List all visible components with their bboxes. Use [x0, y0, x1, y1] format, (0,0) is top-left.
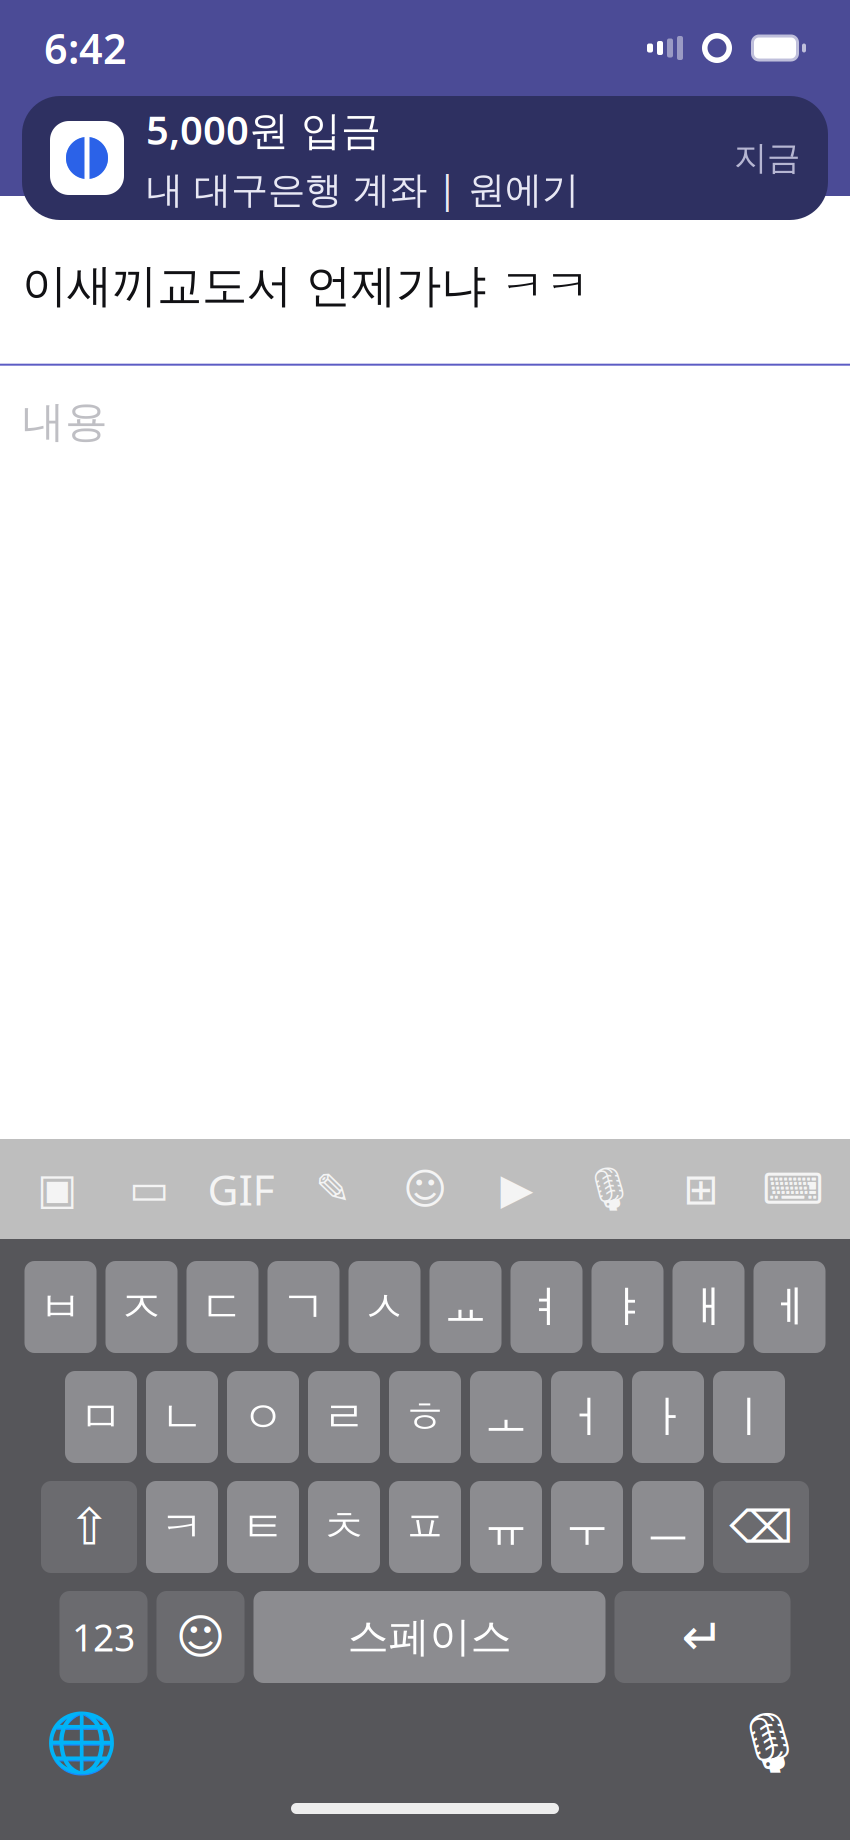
staticText: ㅣ — [727, 1390, 771, 1444]
staticText: GIF — [207, 1161, 274, 1217]
button[interactable]: 5,000원 입금 — [22, 96, 828, 220]
staticText: ▭ — [129, 1165, 169, 1213]
staticText: ㅛ — [443, 1280, 487, 1334]
button[interactable]: Dictate — [734, 1708, 804, 1778]
button[interactable]: ㄴ — [146, 1371, 218, 1463]
staticText: ㄹ — [322, 1390, 366, 1444]
staticText: ↵ — [681, 1608, 723, 1666]
button[interactable]: ㅠ — [470, 1481, 542, 1573]
button[interactable]: ㅕ — [510, 1261, 582, 1353]
staticText: ㅑ — [605, 1280, 649, 1334]
button[interactable]: GIF — [206, 1154, 276, 1224]
button[interactable]: ㅓ — [551, 1371, 623, 1463]
staticText: ㅌ — [241, 1500, 285, 1554]
staticText: ㄴ — [160, 1390, 204, 1444]
staticText: ㅊ — [322, 1500, 366, 1554]
button[interactable]: ㅇ — [227, 1371, 299, 1463]
staticText: ⇧ — [68, 1498, 110, 1556]
button[interactable]: ㄷ — [186, 1261, 258, 1353]
staticText: ☺ — [403, 1165, 447, 1213]
button[interactable]: ㅎ — [389, 1371, 461, 1463]
staticText: ㅂ — [38, 1280, 82, 1334]
button[interactable]: ㅂ — [24, 1261, 96, 1353]
button[interactable]: ㄱ — [267, 1261, 339, 1353]
button[interactable]: ㅡ — [632, 1481, 704, 1573]
button[interactable]: ㅣ — [713, 1371, 785, 1463]
staticText: ㅜ — [565, 1500, 609, 1554]
button[interactable]: 123 — [59, 1591, 147, 1683]
button[interactable]: Draw — [298, 1154, 368, 1224]
button[interactable]: ㅁ — [65, 1371, 137, 1463]
staticText: ㅍ — [403, 1500, 447, 1554]
staticText: ⌫ — [729, 1501, 793, 1553]
staticText: ㅔ — [767, 1280, 811, 1334]
staticText: ☺ — [175, 1610, 225, 1664]
staticText: ⊞ — [683, 1165, 719, 1213]
button[interactable]: More — [666, 1154, 736, 1224]
button[interactable]: ㅗ — [470, 1371, 542, 1463]
staticText: ㅡ — [646, 1500, 690, 1554]
button[interactable]: ㅋ — [146, 1481, 218, 1573]
button[interactable]: Return — [614, 1591, 790, 1683]
staticText: ㅈ — [119, 1280, 163, 1334]
staticText: 내 대구은행 계좌 | 원에기 — [146, 164, 579, 213]
staticText: ▶ — [500, 1165, 533, 1213]
staticText: 🎙 — [732, 1709, 806, 1776]
staticText: ㅋ — [160, 1500, 204, 1554]
staticText: ✎ — [315, 1165, 351, 1213]
button[interactable]: Photos — [22, 1154, 92, 1224]
button[interactable]: ㅏ — [632, 1371, 704, 1463]
button[interactable]: ㅐ — [672, 1261, 744, 1353]
staticText: ㄷ — [200, 1280, 244, 1334]
button[interactable]: ㅍ — [389, 1481, 461, 1573]
staticText: 스페이스 — [347, 1612, 511, 1662]
button[interactable]: ㅑ — [591, 1261, 663, 1353]
staticText: ㅐ — [686, 1280, 730, 1334]
button[interactable]: ㅊ — [308, 1481, 380, 1573]
button[interactable]: ㅌ — [227, 1481, 299, 1573]
staticText: ㅗ — [484, 1390, 528, 1444]
staticText: 🎙 — [582, 1165, 636, 1213]
button[interactable]: Emoji — [156, 1591, 244, 1683]
staticText: 이새끼교도서 언제가냐 ㅋㅋ — [22, 258, 590, 314]
staticText: ㅅ — [362, 1280, 406, 1334]
button[interactable]: ㄹ — [308, 1371, 380, 1463]
staticText: ㅠ — [484, 1500, 528, 1554]
button[interactable]: Video search — [482, 1154, 552, 1224]
button[interactable]: ㅜ — [551, 1481, 623, 1573]
staticText: ㅏ — [646, 1390, 690, 1444]
button[interactable]: ㅈ — [105, 1261, 177, 1353]
staticText: ㅕ — [524, 1280, 568, 1334]
staticText: 6:42 — [44, 21, 127, 75]
button[interactable]: Next keyboard — [46, 1708, 116, 1778]
button[interactable]: ㅛ — [429, 1261, 501, 1353]
staticText: ㅁ — [79, 1390, 123, 1444]
staticText: ㅇ — [241, 1390, 285, 1444]
staticText: ㅎ — [403, 1390, 447, 1444]
staticText: ㄱ — [281, 1280, 325, 1334]
button[interactable]: Shift — [41, 1481, 137, 1573]
staticText: 🌐 — [44, 1709, 117, 1776]
button[interactable]: ㅅ — [348, 1261, 420, 1353]
button[interactable]: Video — [114, 1154, 184, 1224]
button[interactable]: ㅔ — [753, 1261, 825, 1353]
button[interactable]: Voice — [574, 1154, 644, 1224]
button[interactable]: Sticker — [390, 1154, 460, 1224]
staticText: ▣ — [37, 1165, 77, 1213]
staticText: 5,000원 입금 — [146, 103, 381, 156]
staticText: 내용 — [22, 396, 108, 448]
button[interactable]: Delete — [713, 1481, 809, 1573]
button[interactable]: 스페이스 — [253, 1591, 605, 1683]
staticText: 123 — [72, 1612, 135, 1662]
button[interactable]: Hide keyboard — [758, 1154, 828, 1224]
staticText: 지금 — [734, 137, 800, 178]
staticText: ㅓ — [565, 1390, 609, 1444]
staticText: ⌨ — [762, 1165, 824, 1213]
